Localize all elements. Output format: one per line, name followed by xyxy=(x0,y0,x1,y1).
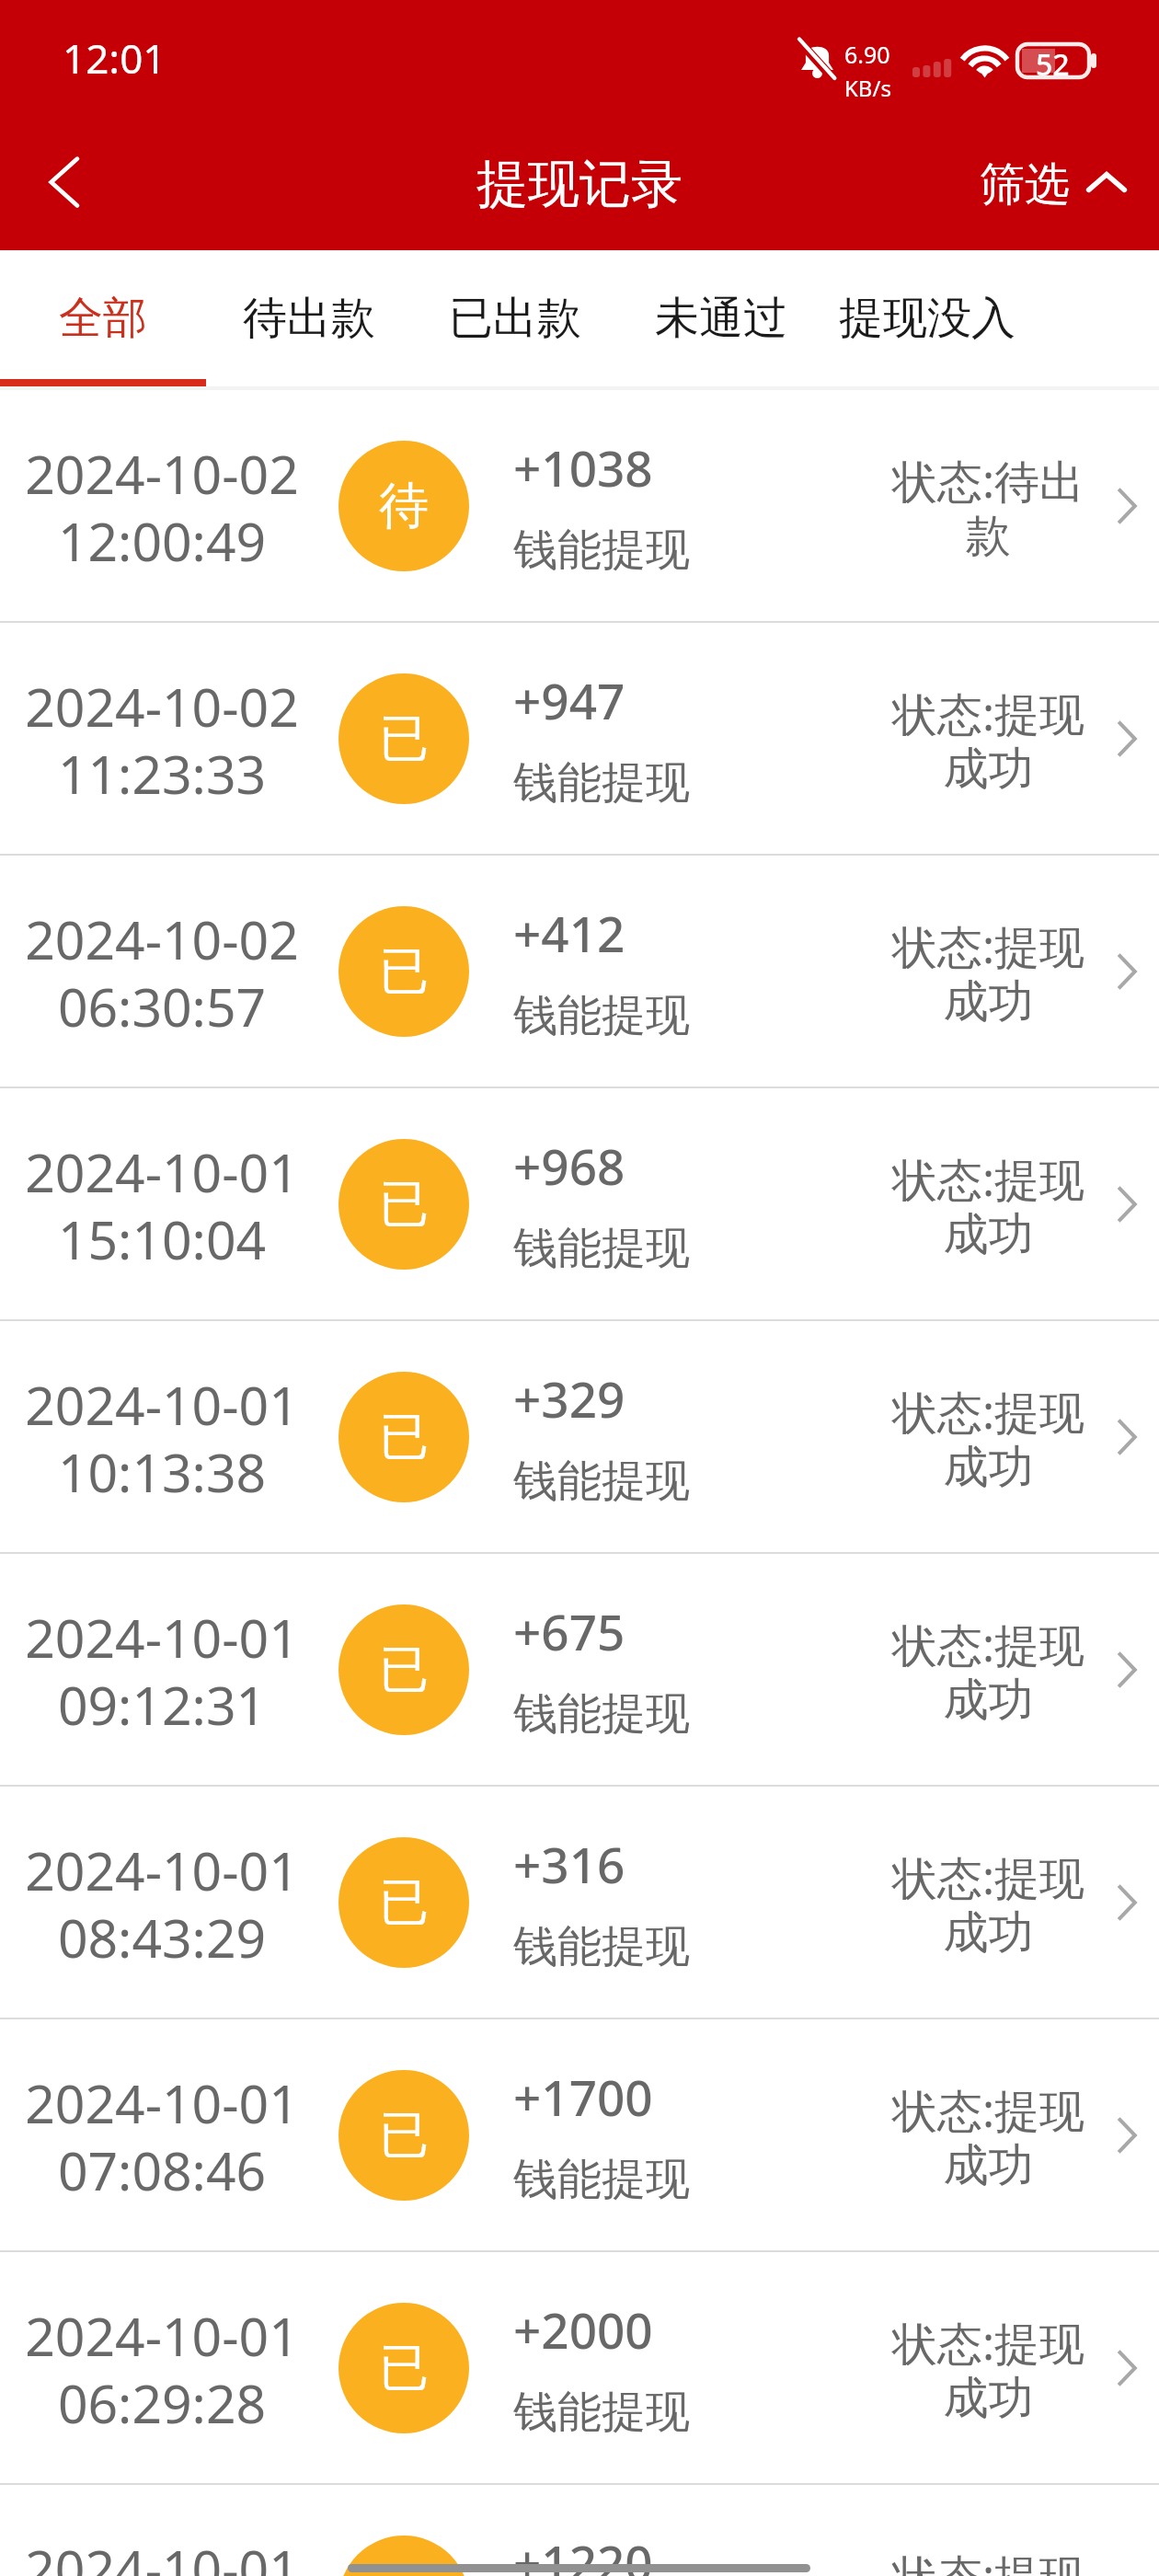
button[interactable]: 2024-10-02 11:23:33 xyxy=(0,623,1159,854)
staticText: 钱能提现 xyxy=(513,1919,690,1974)
staticText: +968 xyxy=(513,1133,625,1199)
staticText: 提现记录 xyxy=(476,152,683,217)
button[interactable]: 2024-10-01 07:08:46 xyxy=(0,2019,1159,2250)
staticText: +1038 xyxy=(513,434,653,500)
staticText: 已 xyxy=(379,940,429,1003)
button[interactable]: 已出款 xyxy=(412,250,618,386)
staticText: 已 xyxy=(379,1871,429,1934)
button[interactable]: 未通过 xyxy=(618,250,824,386)
staticText: 已 xyxy=(379,2337,429,2399)
staticText: +412 xyxy=(513,900,625,966)
button[interactable]: 提现没入 xyxy=(824,250,1030,386)
staticText: 待出款 xyxy=(243,291,375,346)
staticText: +316 xyxy=(513,1831,625,1897)
staticText: 状态:提现成功 xyxy=(876,915,1101,1029)
staticText: 状态:提现成功 xyxy=(876,1614,1101,1728)
staticText: 已 xyxy=(379,707,429,770)
staticText: 状态:提现成功 xyxy=(876,2545,1101,2576)
staticText: +2000 xyxy=(513,2296,653,2363)
button[interactable]: 2024-10-01 06:29:28 xyxy=(0,2252,1159,2483)
staticText: +675 xyxy=(513,1598,625,1664)
staticText: 已 xyxy=(379,1639,429,1701)
staticText: 钱能提现 xyxy=(513,2152,690,2207)
staticText: 钱能提现 xyxy=(513,523,690,578)
staticText: 6.90 xyxy=(844,39,890,70)
staticText: 钱能提现 xyxy=(513,755,690,811)
button[interactable]: 筛选 xyxy=(980,110,1159,250)
staticText: 提现没入 xyxy=(839,291,1016,346)
staticText: 2024-10-02 12:00:49 xyxy=(25,438,299,577)
staticText: 已 xyxy=(379,2104,429,2167)
button[interactable]: 2024-10-02 12:00:49 xyxy=(0,390,1159,621)
button[interactable]: 待出款 xyxy=(206,250,412,386)
staticText: 2024-10-02 06:30:57 xyxy=(25,903,299,1042)
button[interactable]: 全部 xyxy=(0,250,206,386)
button[interactable]: 2024-10-01 15:10:04 xyxy=(0,1088,1159,1319)
staticText: 52 xyxy=(1036,44,1070,85)
staticText: 12:01 xyxy=(63,30,166,86)
staticText: 2024-10-01 09:12:31 xyxy=(25,1602,299,1741)
button[interactable]: 2024-10-01 08:43:29 xyxy=(0,1787,1159,2018)
staticText: 2024-10-02 11:23:33 xyxy=(25,671,299,810)
staticText: 全部 xyxy=(59,291,147,346)
staticText: 2024-10-01 05:12:11 xyxy=(25,2533,299,2576)
staticText: 钱能提现 xyxy=(513,1221,690,1276)
staticText: 钱能提现 xyxy=(513,2385,690,2440)
staticText: +1220 xyxy=(513,2529,653,2576)
staticText: 已出款 xyxy=(449,291,581,346)
staticText: 已 xyxy=(379,2570,429,2576)
staticText: 2024-10-01 15:10:04 xyxy=(25,1136,299,1275)
staticText: 筛选 xyxy=(980,156,1070,213)
staticText: 状态:提现成功 xyxy=(876,1148,1101,1262)
staticText: 钱能提现 xyxy=(513,1454,690,1509)
staticText: 2024-10-01 10:13:38 xyxy=(25,1369,299,1508)
button[interactable]: Back xyxy=(0,110,125,250)
staticText: 钱能提现 xyxy=(513,988,690,1043)
staticText: 已 xyxy=(379,1406,429,1468)
staticText: 2024-10-01 08:43:29 xyxy=(25,1834,299,1973)
staticText: 钱能提现 xyxy=(513,1686,690,1742)
staticText: 2024-10-01 07:08:46 xyxy=(25,2067,299,2206)
staticText: +947 xyxy=(513,667,625,733)
button[interactable]: 2024-10-01 05:12:11 xyxy=(0,2485,1159,2576)
staticText: 状态:提现成功 xyxy=(876,1381,1101,1495)
staticText: +329 xyxy=(513,1365,625,1432)
staticText: 已 xyxy=(379,1173,429,1236)
staticText: 未通过 xyxy=(655,291,787,346)
staticText: 状态:提现成功 xyxy=(876,1846,1101,1961)
button[interactable]: 2024-10-02 06:30:57 xyxy=(0,856,1159,1087)
staticText: 状态:待出款 xyxy=(876,450,1101,564)
staticText: 待 xyxy=(379,475,429,537)
button[interactable]: 2024-10-01 10:13:38 xyxy=(0,1321,1159,1552)
staticText: 2024-10-01 06:29:28 xyxy=(25,2300,299,2439)
staticText: 状态:提现成功 xyxy=(876,2079,1101,2193)
staticText: KB/s xyxy=(844,73,891,103)
button[interactable]: 2024-10-01 09:12:31 xyxy=(0,1554,1159,1785)
staticText: 状态:提现成功 xyxy=(876,683,1101,797)
staticText: +1700 xyxy=(513,2064,653,2130)
staticText: 状态:提现成功 xyxy=(876,2312,1101,2426)
